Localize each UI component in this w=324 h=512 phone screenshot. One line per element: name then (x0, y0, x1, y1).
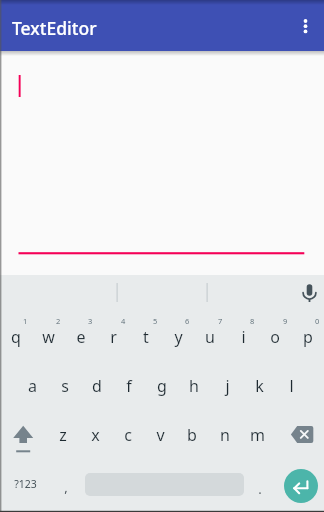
button[interactable]: w (32, 312, 64, 361)
staticText: g (157, 375, 167, 397)
staticText: 5 (153, 316, 158, 326)
staticText: n (220, 424, 230, 446)
staticText: w (42, 326, 55, 348)
staticText: m (250, 424, 265, 446)
button[interactable]: h (178, 361, 210, 410)
button[interactable]: n (209, 410, 241, 459)
staticText: s (61, 375, 69, 397)
button[interactable]: ?123 (4, 465, 46, 503)
staticText: c (124, 424, 132, 446)
button[interactable]: r (97, 312, 129, 361)
button[interactable]: k (243, 361, 275, 410)
staticText: 4 (121, 316, 126, 326)
button[interactable]: p (292, 312, 324, 361)
staticText: h (189, 375, 199, 397)
staticText: r (110, 326, 117, 348)
staticText: 9 (283, 316, 288, 326)
button[interactable]: q (0, 312, 32, 361)
button[interactable]: z (47, 410, 79, 459)
staticText: b (187, 424, 197, 446)
staticText: TextEditor (12, 16, 97, 40)
staticText: q (11, 326, 21, 348)
button[interactable]: m (241, 410, 273, 459)
staticText: i (241, 326, 246, 348)
button[interactable]: t (130, 312, 162, 361)
staticText: y (174, 326, 183, 348)
staticText: a (28, 375, 37, 397)
button[interactable]: d (81, 361, 113, 410)
button[interactable]: , (50, 468, 82, 506)
button[interactable] (292, 12, 320, 40)
staticText: 1 (23, 316, 28, 326)
staticText: o (270, 326, 280, 348)
button[interactable]: s (49, 361, 81, 410)
staticText: 0 (315, 316, 320, 326)
button[interactable]: l (275, 361, 307, 410)
staticText: , (64, 478, 68, 496)
button[interactable]: f (113, 361, 145, 410)
staticText: 7 (218, 316, 223, 326)
staticText: 6 (185, 316, 190, 326)
button[interactable]: i (227, 312, 259, 361)
staticText: e (76, 326, 86, 348)
staticText: l (289, 375, 294, 397)
staticText: . (258, 480, 262, 498)
button[interactable]: o (259, 312, 291, 361)
staticText: d (92, 375, 102, 397)
button[interactable] (284, 469, 318, 503)
button[interactable]: v (144, 410, 176, 459)
staticText: 2 (56, 316, 61, 326)
staticText: x (91, 424, 100, 446)
staticText: u (205, 326, 215, 348)
button[interactable] (283, 415, 323, 457)
button[interactable]: . (244, 470, 276, 508)
button[interactable]: y (162, 312, 194, 361)
button[interactable] (296, 278, 323, 305)
staticText: 8 (250, 316, 255, 326)
staticText: ?123 (14, 477, 37, 491)
staticText: 3 (88, 316, 93, 326)
staticText: j (225, 375, 230, 397)
button[interactable]: g (146, 361, 178, 410)
button[interactable]: j (211, 361, 243, 410)
button[interactable]: x (79, 410, 111, 459)
button[interactable]: a (16, 361, 48, 410)
staticText: v (156, 424, 165, 446)
button[interactable]: u (194, 312, 226, 361)
button[interactable]: c (112, 410, 144, 459)
staticText: k (255, 375, 264, 397)
button[interactable] (4, 415, 44, 457)
button[interactable]: b (176, 410, 208, 459)
staticText: z (59, 424, 67, 446)
button[interactable]: e (65, 312, 97, 361)
staticText: p (303, 326, 313, 348)
staticText: t (143, 326, 149, 348)
staticText: f (126, 375, 132, 397)
